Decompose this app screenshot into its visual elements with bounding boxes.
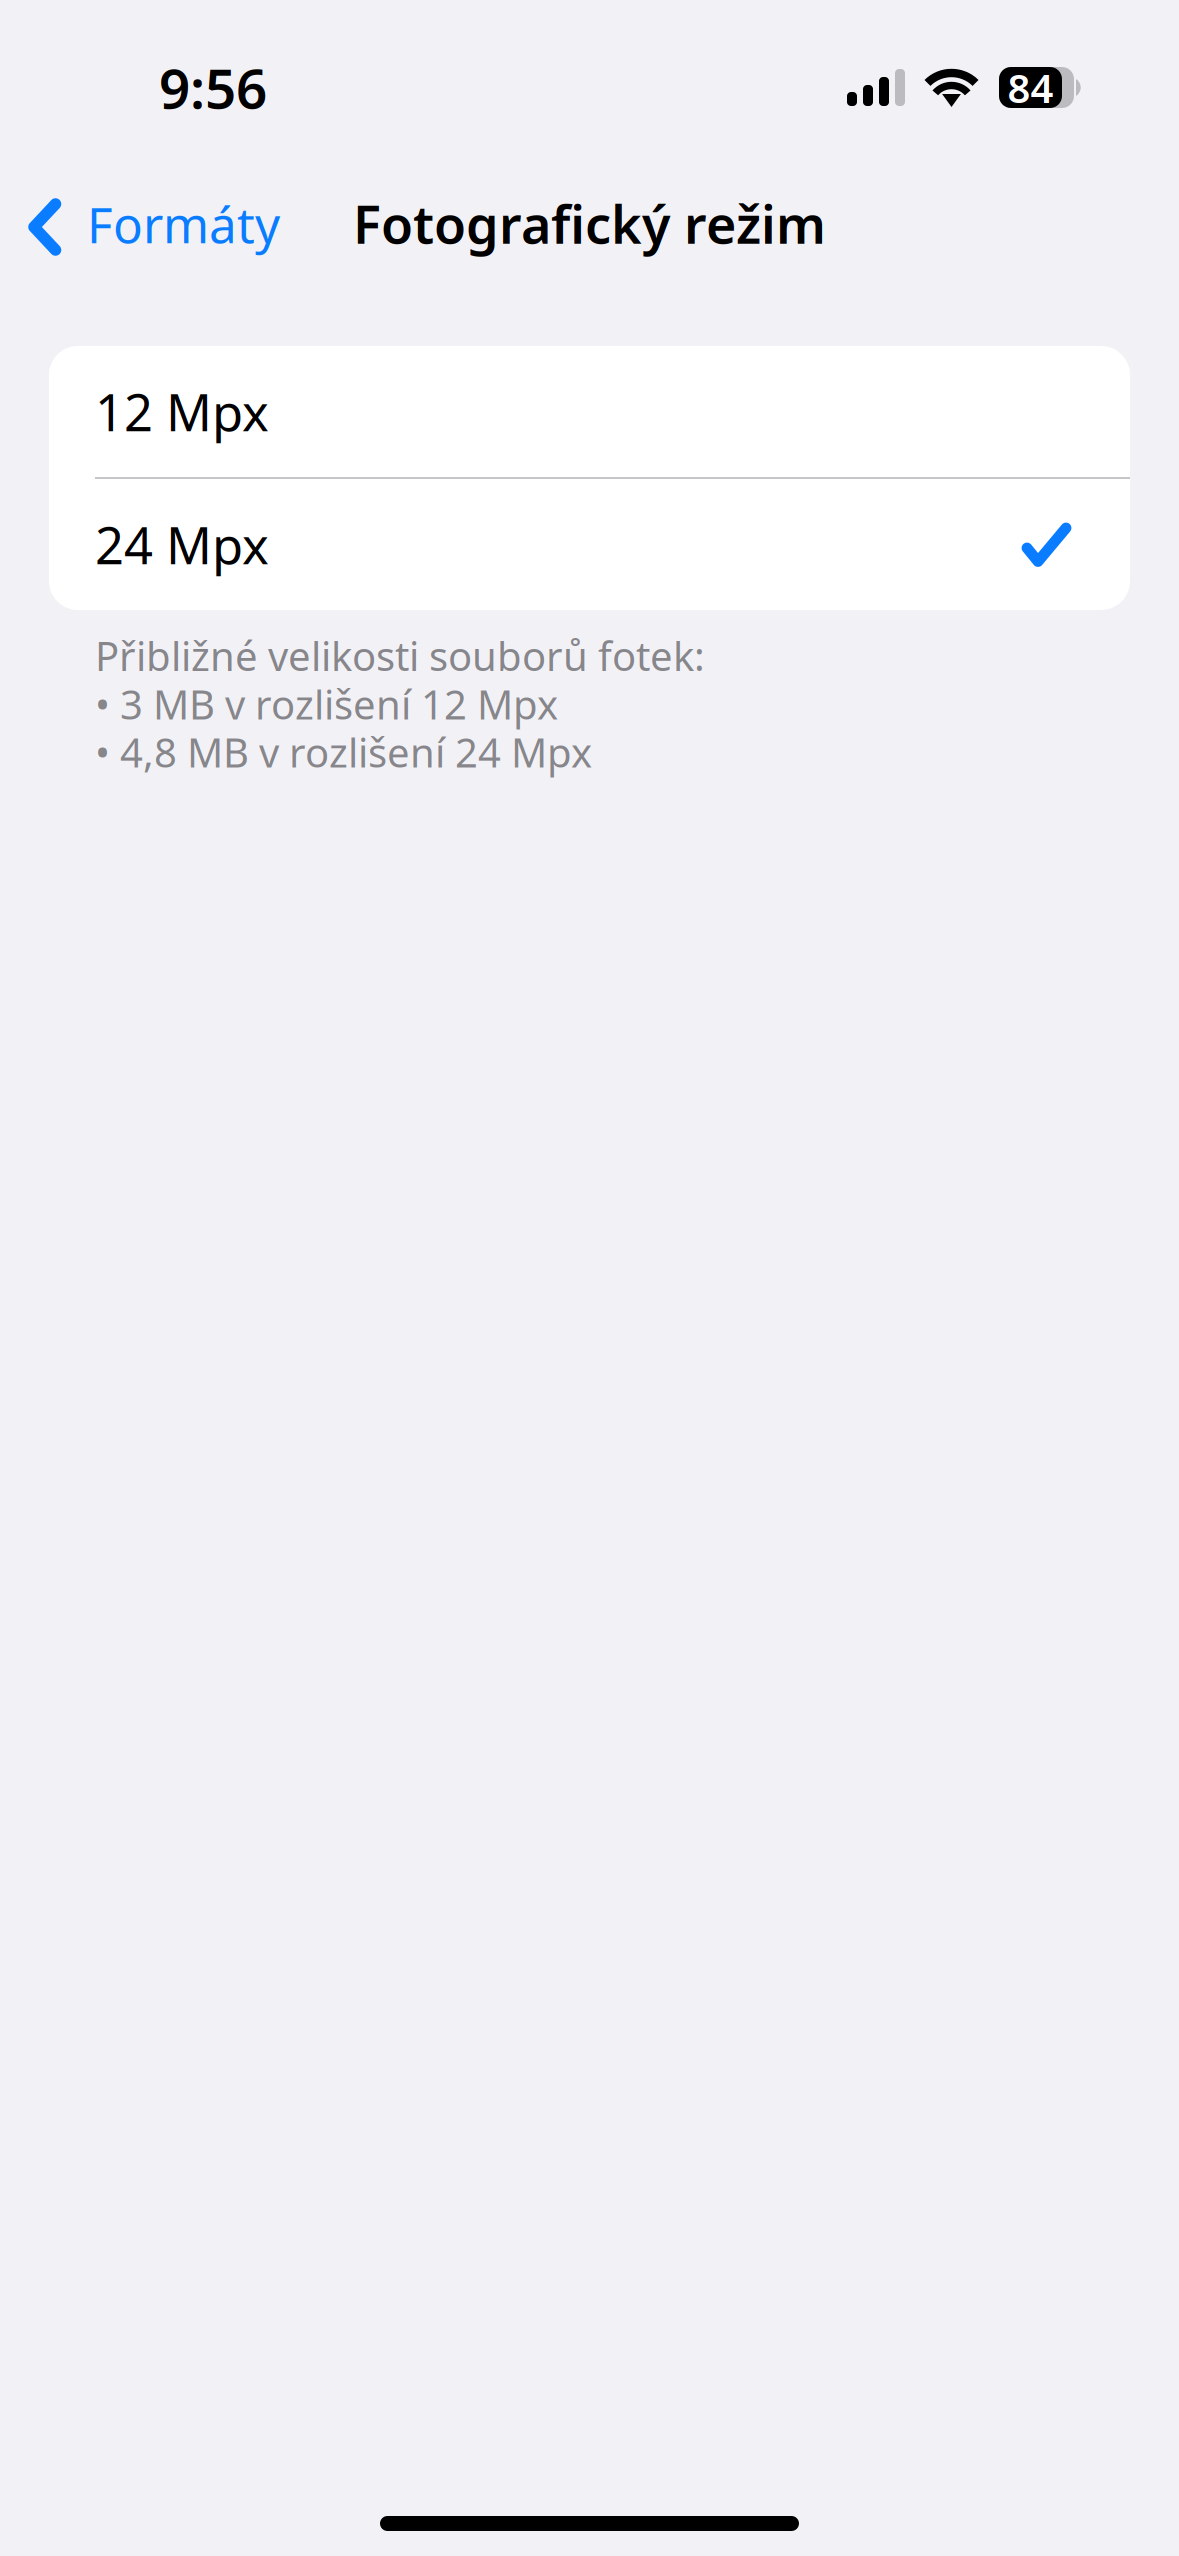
staticText: 84 [1007, 61, 1053, 114]
staticText: Přibližné velikosti souborů fotek: [95, 629, 705, 682]
staticText: Fotografický režim [353, 189, 826, 258]
staticText: Formáty [87, 191, 280, 257]
button[interactable]: 12 Mpx [49, 346, 1130, 477]
button[interactable]: Zpět na Formáty [0, 198, 300, 256]
staticText: 9:56 [159, 51, 267, 124]
staticText: • 3 MB v rozlišení 12 Mpx [95, 677, 558, 730]
button[interactable]: 24 Mpx [49, 479, 1130, 610]
staticText: 12 Mpx [95, 378, 269, 445]
staticText: 24 Mpx [95, 511, 269, 578]
staticText: • 4,8 MB v rozlišení 24 Mpx [95, 725, 592, 778]
